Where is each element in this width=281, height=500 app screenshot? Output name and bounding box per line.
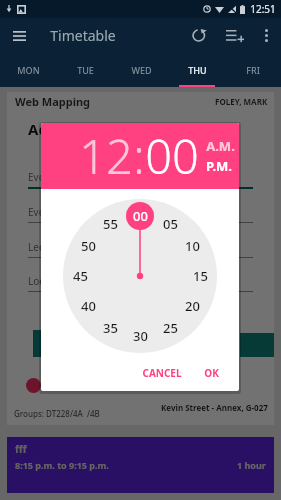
button[interactable]: Open navigation menu [0,18,39,53]
staticText: 12 [79,124,133,188]
button[interactable]: OK [199,361,224,385]
staticText: 20 [185,297,200,315]
staticText: Add [28,119,58,139]
staticText: 12:51 [250,2,276,16]
staticText: WED [131,64,152,76]
button[interactable]: MON [0,53,57,87]
staticText: 55 [103,215,118,233]
button[interactable] [33,330,67,357]
button[interactable]: CANCEL [137,361,187,385]
staticText: CANCEL [142,366,182,380]
button[interactable]: Location [28,274,253,296]
staticText: 45 [73,267,88,285]
staticText: 05 [163,215,178,233]
staticText: 40 [81,297,96,315]
staticText: FOLEY, MARK [215,96,268,107]
staticText: P.M. [206,157,232,175]
staticText: 1 hour [237,459,266,471]
staticText: : [133,124,145,188]
button[interactable]: THU [169,53,225,87]
button[interactable]: fff [7,437,274,493]
staticText: 15 [193,267,208,285]
button[interactable] [26,378,41,393]
staticText: 35 [103,319,118,337]
button[interactable]: Web Mapping [7,92,274,425]
staticText: THU [188,64,207,76]
button[interactable]: More options [253,18,279,53]
staticText: 25 [163,319,178,337]
button[interactable]: WED [113,53,169,87]
staticText: Location [28,274,69,288]
button[interactable]: Lecturer [28,240,253,262]
button[interactable]: Refresh [181,18,217,53]
staticText: 00 [145,124,199,188]
button[interactable]: 12 [79,124,133,188]
button[interactable]: TUE [57,53,113,87]
staticText: 8:15 p.m. to 9:15 p.m. [15,459,109,471]
button[interactable]: A.M. [206,137,235,155]
button[interactable]: 00 [145,124,199,188]
staticText: 10 [185,237,200,255]
staticText: MON [17,64,40,76]
staticText: 00 [133,207,148,225]
button[interactable]: Event name [28,170,253,192]
staticText: Lecturer [28,240,68,254]
staticText: Event name [28,170,84,184]
staticText: Kevin Street - Annex, G-027 [161,402,268,413]
staticText: FRI [246,64,260,76]
button[interactable]: P.M. [206,157,232,175]
staticText: Event type [28,205,78,219]
staticText: TUE [77,64,94,76]
button[interactable]: Event type [28,205,253,227]
button[interactable]: FRI [225,53,281,87]
staticText: A.M. [206,137,235,155]
staticText: Timetable [50,26,116,45]
staticText: fff [15,442,27,456]
button[interactable]: Add event [217,18,253,53]
staticText: Web Mapping [15,94,91,109]
staticText: Groups: DT228/4A /4B [14,408,100,419]
staticText: 30 [133,327,148,345]
staticText: 50 [81,237,96,255]
staticText: OK [204,366,219,380]
